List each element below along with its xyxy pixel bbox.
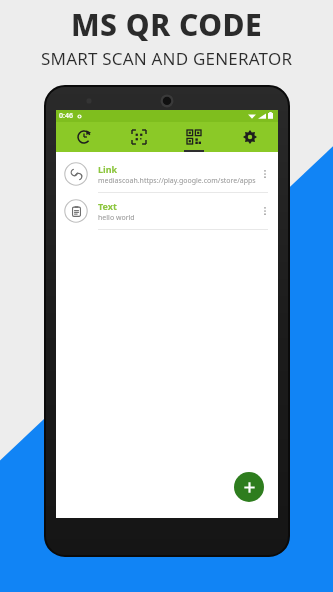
staticText: hello world	[98, 213, 135, 223]
staticText: MS QR CODE	[71, 4, 263, 45]
button[interactable]: History	[56, 122, 111, 152]
button[interactable]: Generate	[166, 122, 222, 152]
button[interactable]: Link	[56, 156, 278, 192]
staticText: Text	[98, 200, 117, 212]
button[interactable]: Settings	[222, 122, 278, 152]
button[interactable]: More options	[258, 167, 272, 181]
button[interactable]: Add	[234, 472, 264, 502]
button[interactable]: More options	[258, 204, 272, 218]
staticText: 0:46	[59, 111, 73, 121]
button[interactable]: Text	[56, 193, 278, 229]
staticText: mediascoah.https://play.google.com/store…	[98, 176, 256, 186]
button[interactable]: Scan	[111, 122, 166, 152]
staticText: Link	[98, 163, 118, 175]
staticText: SMART SCAN AND GENERATOR	[41, 47, 293, 70]
